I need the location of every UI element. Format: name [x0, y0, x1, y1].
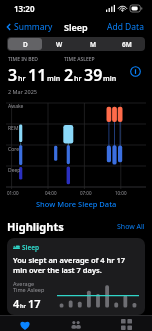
staticText: M: [90, 40, 97, 49]
staticText: 01:00: [7, 190, 19, 196]
staticText: Sleep: [64, 21, 88, 33]
staticText: hr: [20, 302, 28, 309]
staticText: Core: [8, 146, 19, 153]
button[interactable]: Sleep: [7, 238, 145, 315]
staticText: W: [56, 40, 63, 49]
button[interactable]: Summary: [0, 316, 50, 331]
staticText: Show All: [117, 222, 145, 232]
staticText: 2: [64, 64, 74, 86]
button[interactable]: 6M: [110, 38, 144, 50]
staticText: Show More Sleep Data: [36, 199, 117, 209]
staticText: 3: [8, 64, 18, 86]
staticText: Sleep: [22, 243, 40, 252]
button[interactable]: M: [76, 38, 110, 50]
staticText: Deep: [8, 167, 21, 174]
staticText: min: [103, 74, 117, 84]
staticText: hr: [74, 74, 84, 84]
button[interactable]: Summary: [4, 21, 53, 33]
staticText: min: [47, 74, 61, 84]
staticText: Average Time Asleep: [13, 280, 45, 294]
button[interactable]: Add Data: [107, 21, 144, 33]
staticText: Summary: [14, 21, 53, 33]
button[interactable]: Show All: [117, 222, 145, 232]
staticText: 39: [84, 64, 103, 86]
button[interactable]: Sharing: [50, 316, 101, 331]
button[interactable]: W: [42, 38, 76, 50]
staticText: 6M: [122, 40, 132, 49]
staticText: TIME IN BED: [8, 56, 38, 63]
staticText: D: [23, 40, 28, 49]
staticText: 17: [28, 296, 41, 310]
staticText: TIME ASLEEP: [64, 56, 95, 63]
staticText: REM: [8, 125, 19, 132]
staticText: 11: [28, 64, 47, 86]
staticText: You slept an average of 4 hr 17 min over…: [13, 255, 139, 275]
staticText: hr: [18, 74, 28, 84]
staticText: 04:00: [45, 190, 57, 196]
button[interactable]: Info: [126, 62, 144, 80]
staticText: 2 Mar 2025: [8, 88, 37, 95]
staticText: 4: [13, 296, 20, 310]
staticText: Highlights: [7, 219, 64, 234]
staticText: Awake: [8, 103, 24, 110]
button[interactable]: Show More Sleep Data: [0, 196, 152, 212]
staticText: 10:00: [115, 190, 127, 196]
button[interactable]: D: [8, 38, 42, 50]
staticText: 07:00: [80, 190, 92, 196]
button[interactable]: Browse: [101, 316, 152, 331]
staticText: 13:20: [14, 3, 35, 14]
